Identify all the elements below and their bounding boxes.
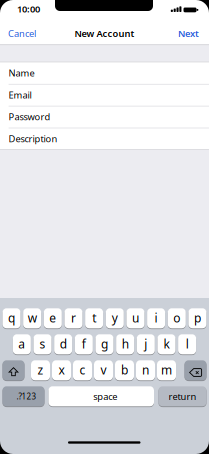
button[interactable]: o [168, 307, 186, 329]
button[interactable]: g [95, 333, 113, 355]
staticText: j [144, 336, 147, 352]
button[interactable]: n [136, 359, 155, 381]
staticText: g [101, 336, 108, 352]
staticText: r [71, 310, 76, 326]
staticText: h [122, 336, 129, 352]
staticText: space [93, 390, 117, 402]
staticText: n [142, 362, 149, 378]
button[interactable]: Next [159, 26, 199, 40]
button[interactable]: i [147, 307, 165, 329]
button[interactable]: z [31, 359, 50, 381]
button[interactable]: p [188, 307, 206, 329]
button[interactable]: m [157, 359, 176, 381]
button[interactable]: u [126, 307, 144, 329]
staticText: Cancel [8, 27, 36, 39]
staticText: a [18, 336, 25, 352]
staticText: s [39, 336, 45, 352]
staticText: New Account [74, 27, 134, 39]
staticText: o [173, 310, 180, 326]
button[interactable]: Password [9, 106, 209, 128]
button[interactable]: Email [9, 84, 209, 106]
staticText: z [37, 362, 43, 378]
button[interactable]: space [48, 385, 154, 407]
staticText: i [155, 310, 158, 326]
staticText: e [49, 310, 56, 326]
staticText: return [168, 390, 196, 402]
button[interactable]: .?123 [2, 385, 44, 407]
staticText: x [58, 362, 64, 378]
button[interactable]: d [54, 333, 72, 355]
staticText: p [194, 310, 201, 326]
button[interactable]: Name [9, 62, 209, 84]
button[interactable]: j [137, 333, 155, 355]
staticText: Description [9, 132, 58, 145]
staticText: .?123 [16, 391, 36, 402]
button[interactable]: h [116, 333, 134, 355]
button[interactable]: q [2, 307, 20, 329]
button[interactable]: Cancel [8, 26, 48, 40]
button[interactable]: x [52, 359, 71, 381]
button[interactable]: Description [9, 128, 209, 150]
staticText: Name [9, 67, 35, 79]
button[interactable]: v [94, 359, 113, 381]
button[interactable]: a [13, 333, 31, 355]
staticText: b [121, 362, 128, 378]
button[interactable]: Delete [184, 359, 206, 381]
button[interactable]: w [23, 307, 41, 329]
staticText: l [186, 336, 189, 352]
button[interactable]: e [44, 307, 62, 329]
staticText: w [28, 310, 37, 326]
button[interactable]: c [73, 359, 92, 381]
staticText: y [112, 310, 118, 326]
staticText: c [79, 362, 85, 378]
staticText: Password [9, 111, 51, 123]
button[interactable]: r [64, 307, 82, 329]
staticText: f [82, 336, 86, 352]
button[interactable]: f [75, 333, 93, 355]
staticText: q [8, 310, 15, 326]
staticText: Email [9, 89, 32, 101]
staticText: 10:00 [17, 3, 40, 15]
button[interactable]: return [158, 385, 206, 407]
button[interactable]: b [115, 359, 134, 381]
button[interactable]: k [157, 333, 175, 355]
staticText: t [92, 310, 96, 326]
staticText: v [100, 362, 106, 378]
staticText: k [163, 336, 169, 352]
button[interactable]: y [106, 307, 124, 329]
button[interactable]: Shift [2, 359, 24, 381]
button[interactable]: l [178, 333, 196, 355]
staticText: d [60, 336, 67, 352]
staticText: u [132, 310, 139, 326]
staticText: Next [178, 27, 199, 39]
button[interactable]: t [85, 307, 103, 329]
staticText: m [161, 362, 172, 378]
button[interactable]: s [33, 333, 51, 355]
